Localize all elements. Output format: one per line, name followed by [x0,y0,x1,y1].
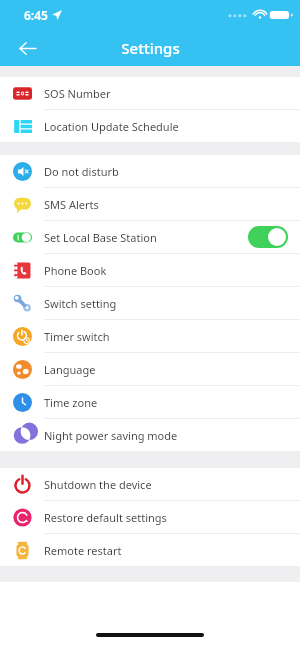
staticText: Night power saving mode [44,428,178,443]
button[interactable]: Do not disturb [0,155,300,187]
staticText: Phone Book [44,263,107,278]
staticText: Do not disturb [44,164,119,179]
button[interactable]: Remote restart [0,534,300,566]
staticText: Remote restart [44,543,122,558]
staticText: Settings [121,38,180,58]
button[interactable]: Set Local Base Station toggle [248,226,288,248]
button[interactable]: Language [0,353,300,385]
staticText: Location Update Schedule [44,119,179,134]
staticText: 6:45 [24,7,48,23]
staticText: Set Local Base Station [44,230,157,245]
button[interactable]: SOS Number [0,77,300,109]
staticText: SOS Number [44,86,111,101]
button[interactable]: Back [10,31,44,65]
staticText: Switch setting [44,296,117,311]
staticText: Time zone [44,395,98,410]
button[interactable]: Switch setting [0,287,300,319]
button[interactable]: Set Local Base Station [0,221,300,253]
staticText: Shutdown the device [44,477,152,492]
button[interactable]: Location Update Schedule [0,110,300,142]
button[interactable]: Timer switch [0,320,300,352]
button[interactable]: Restore default settings [0,501,300,533]
staticText: Timer switch [44,329,110,344]
staticText: Language [44,362,96,377]
button[interactable]: Time zone [0,386,300,418]
button[interactable]: SMS Alerts [0,188,300,220]
button[interactable]: Night power saving mode [0,419,300,451]
staticText: Restore default settings [44,510,167,525]
staticText: SMS Alerts [44,197,99,212]
button[interactable]: Phone Book [0,254,300,286]
button[interactable]: Shutdown the device [0,468,300,500]
